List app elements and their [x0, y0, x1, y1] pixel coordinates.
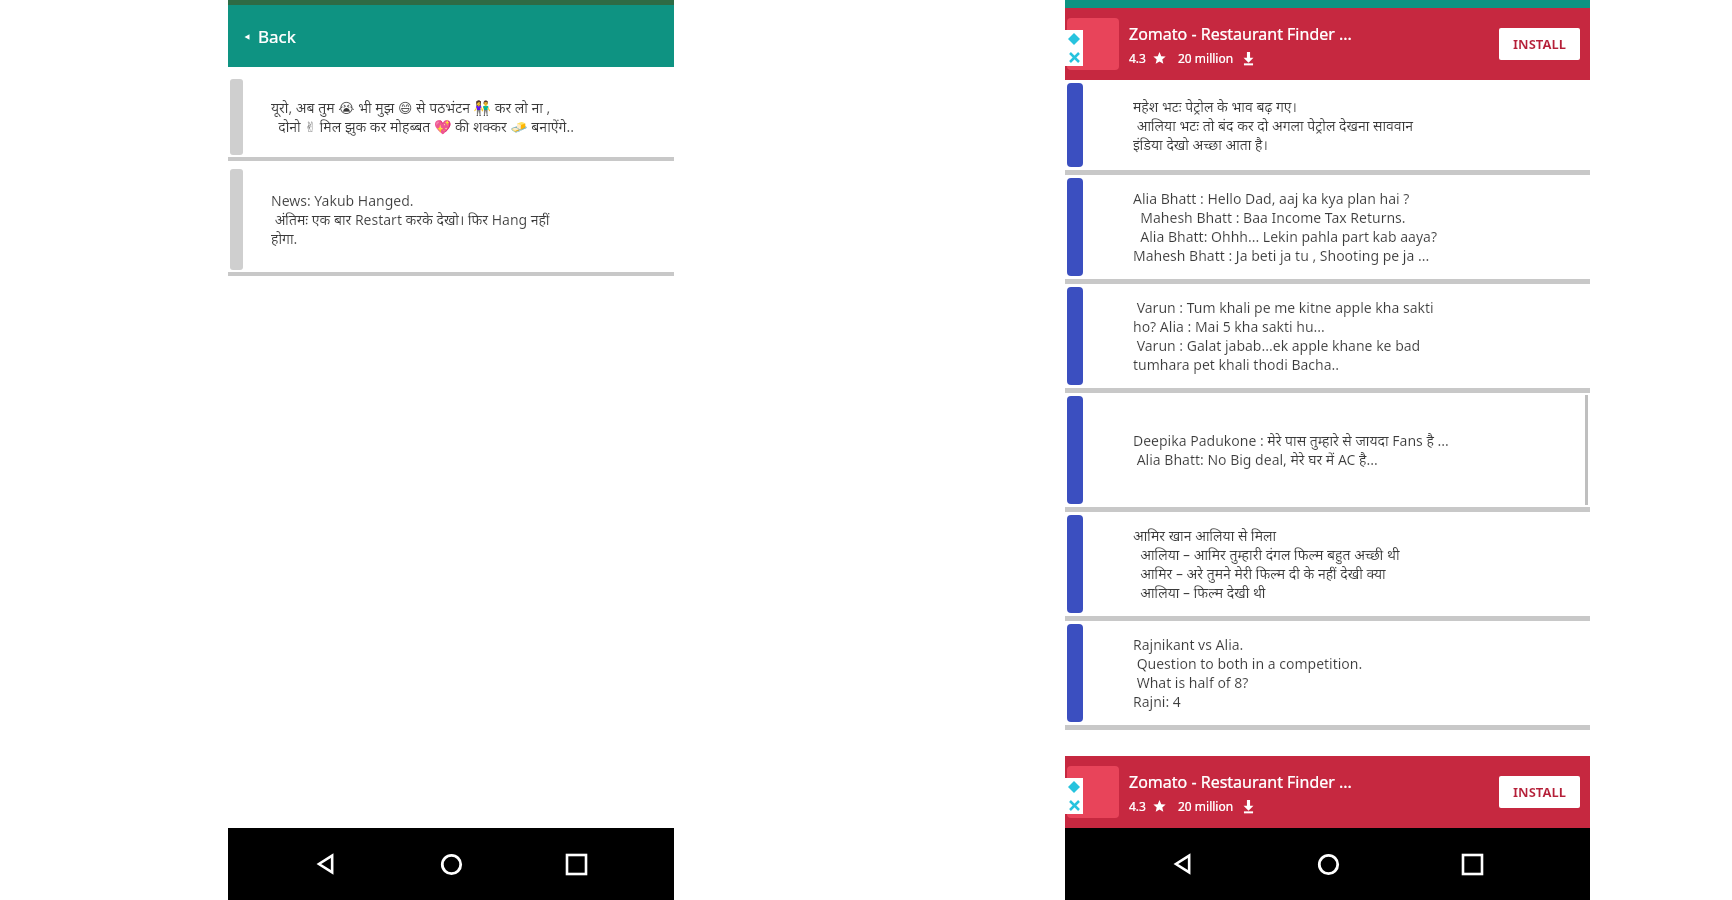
button[interactable]: Ad choices — [1065, 778, 1083, 796]
staticText: Rajnikant vs Alia. — [1133, 635, 1244, 654]
staticText: Deepika Padukone : मेरे पास तुम्हारे से … — [1133, 431, 1449, 450]
staticText: महेश भटः पेट्रोल के भाव बढ़ गए। — [1133, 97, 1297, 116]
staticText: News: Yakub Hanged. — [271, 191, 414, 210]
staticText: आलिया भटः तो बंद कर दो अगला पेट्रोल देखन… — [1133, 116, 1414, 135]
button[interactable]: Home — [1301, 837, 1355, 891]
staticText: What is half of 8? — [1133, 673, 1249, 692]
button[interactable]: यूरो, अब तुम 😭 भी मुझ 😄 से पठभंटन 👫 कर ल… — [228, 77, 674, 157]
button[interactable]: INSTALL — [1513, 35, 1566, 53]
staticText: दोनो ✌ मिल झुक कर मोहब्बत 💖 की शक्कर 🧈 ब… — [271, 117, 574, 136]
staticText: Mahesh Bhatt : Ja beti ja tu , Shooting … — [1133, 246, 1430, 265]
staticText: Back — [258, 25, 296, 48]
staticText: यूरो, अब तुम 😭 भी मुझ 😄 से पठभंटन 👫 कर ल… — [271, 98, 551, 117]
staticText: INSTALL — [1513, 35, 1566, 53]
button[interactable]: महेश भटः पेट्रोल के भाव बढ़ गए। — [1065, 80, 1590, 170]
button[interactable]: Zomato - Restaurant Finder ... — [1065, 756, 1590, 828]
button[interactable]: Back — [299, 837, 353, 891]
staticText: 4.3 — [1129, 798, 1146, 814]
staticText: Question to both in a competition. — [1133, 654, 1363, 673]
button[interactable]: Rajnikant vs Alia. — [1065, 621, 1590, 725]
staticText: Varun : Galat jabab...ek apple khane ke … — [1133, 336, 1421, 355]
staticText: अंतिमः एक बार Restart करके देखो। फिर Han… — [271, 210, 550, 229]
button[interactable]: News: Yakub Hanged. — [228, 167, 674, 272]
other: Downloads — [1242, 800, 1255, 813]
button[interactable]: Ad choices — [1065, 30, 1083, 48]
staticText: Rajni: 4 — [1133, 692, 1181, 711]
staticText: 4.3 — [1129, 50, 1146, 66]
staticText: Mahesh Bhatt : Baa Income Tax Returns. — [1133, 208, 1406, 227]
button[interactable]: आमिर खान आलिया से मिला — [1065, 512, 1590, 616]
other: Rating — [1153, 52, 1166, 65]
button[interactable]: Close ad — [1065, 796, 1083, 814]
staticText: आमिर खान आलिया से मिला — [1133, 526, 1277, 545]
staticText: Varun : Tum khali pe me kitne apple kha … — [1133, 298, 1434, 317]
button[interactable]: Varun : Tum khali pe me kitne apple kha … — [1065, 284, 1590, 388]
staticText: Zomato - Restaurant Finder ... — [1129, 23, 1352, 45]
button[interactable]: Back — [228, 5, 674, 67]
button[interactable]: Zomato - Restaurant Finder ... — [1065, 8, 1590, 80]
button[interactable]: INSTALL — [1513, 783, 1566, 801]
staticText: इंडिया देखो अच्छा आता है। — [1133, 135, 1268, 154]
staticText: Alia Bhatt: No Big deal, मेरे घर में AC … — [1133, 450, 1378, 469]
staticText: Alia Bhatt: Ohhh... Lekin pahla part kab… — [1133, 227, 1437, 246]
button[interactable]: Recent apps — [1445, 837, 1499, 891]
other: Downloads — [1242, 52, 1255, 65]
staticText: Zomato - Restaurant Finder ... — [1129, 771, 1352, 793]
staticText: आमिर – अरे तुमने मेरी फिल्म दी के नहीं द… — [1133, 564, 1386, 583]
button[interactable]: Back — [1156, 837, 1210, 891]
button[interactable]: Close ad — [1065, 48, 1083, 66]
staticText: ho? Alia : Mai 5 kha sakti hu... — [1133, 317, 1325, 336]
other: Rating — [1153, 800, 1166, 813]
button[interactable]: Recent apps — [549, 837, 603, 891]
button[interactable]: Alia Bhatt : Hello Dad, aaj ka kya plan … — [1065, 175, 1590, 279]
button[interactable]: Home — [424, 837, 478, 891]
button[interactable]: Deepika Padukone : मेरे पास तुम्हारे से … — [1065, 393, 1590, 507]
staticText: tumhara pet khali thodi Bacha.. — [1133, 355, 1340, 374]
staticText: INSTALL — [1513, 783, 1566, 801]
staticText: 20 million — [1178, 50, 1234, 66]
staticText: आलिया – फिल्म देखी थी — [1133, 583, 1266, 602]
staticText: 20 million — [1178, 798, 1234, 814]
staticText: Alia Bhatt : Hello Dad, aaj ka kya plan … — [1133, 189, 1410, 208]
staticText: होगा. — [271, 229, 298, 248]
staticText: आलिया – आमिर तुम्हारी दंगल फिल्म बहुत अच… — [1133, 545, 1400, 564]
